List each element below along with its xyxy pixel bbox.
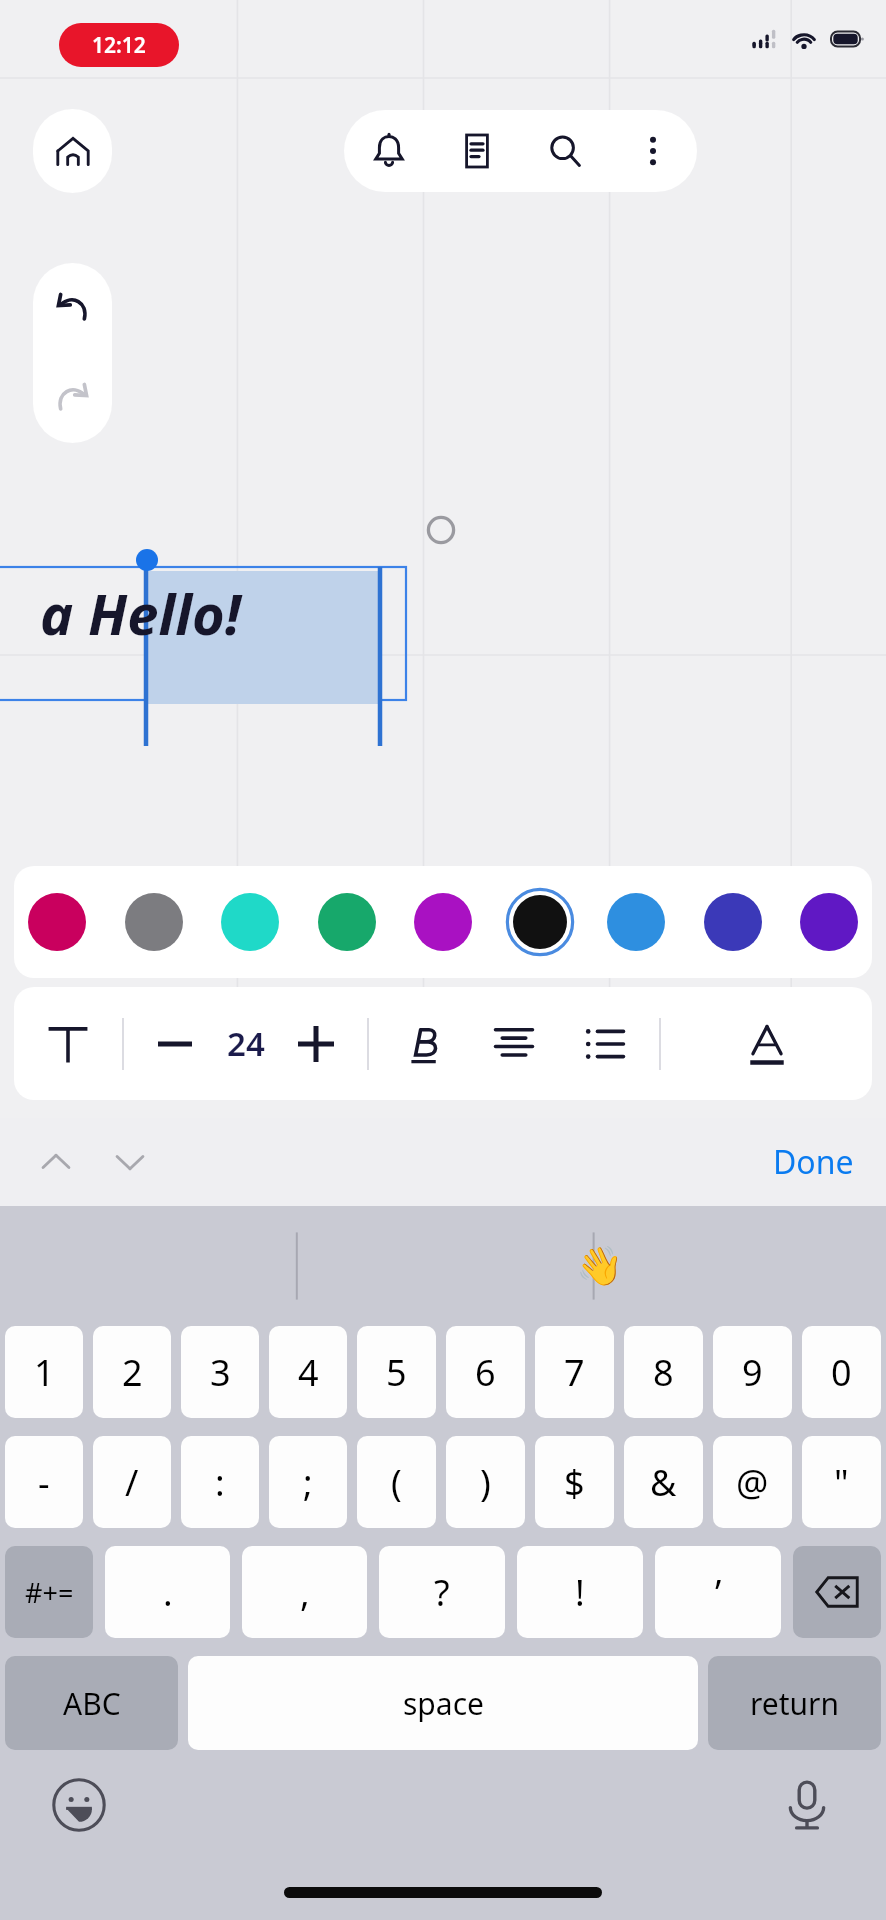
staticText: 2	[122, 1348, 143, 1397]
button[interactable]: -	[5, 1436, 83, 1528]
button[interactable]: Colour 0	[22, 887, 92, 957]
staticText: :	[215, 1458, 225, 1507]
staticText: a	[40, 575, 74, 651]
button[interactable]: )	[446, 1436, 525, 1528]
staticText: ;	[303, 1458, 313, 1507]
button[interactable]: List	[569, 1008, 641, 1080]
button[interactable]: Search	[521, 110, 609, 192]
staticText: .	[163, 1568, 173, 1617]
button[interactable]: 0	[802, 1326, 881, 1418]
button[interactable]: Undo	[33, 263, 112, 353]
button[interactable]: Notifications	[344, 110, 433, 192]
button[interactable]: :	[181, 1436, 259, 1528]
button[interactable]: Document	[433, 110, 521, 192]
staticText: "	[834, 1458, 849, 1507]
button[interactable]: ABC	[5, 1656, 178, 1750]
button[interactable]: $	[535, 1436, 614, 1528]
button[interactable]: ,	[242, 1546, 367, 1638]
staticText: (	[391, 1458, 402, 1507]
button[interactable]: ?	[379, 1546, 505, 1638]
staticText: 8	[653, 1348, 674, 1397]
button[interactable]: 6	[446, 1326, 525, 1418]
button[interactable]: Colour 3	[312, 887, 382, 957]
button[interactable]: Bold	[388, 1008, 460, 1080]
staticText: Hello!	[88, 575, 241, 651]
staticText: 0	[831, 1348, 852, 1397]
button[interactable]: More options	[609, 110, 697, 192]
button[interactable]: Next field	[100, 1132, 160, 1192]
button[interactable]: Colour 7	[698, 887, 768, 957]
staticText: &	[650, 1458, 677, 1507]
button[interactable]: Text style	[14, 987, 122, 1100]
button[interactable]: #+=	[5, 1546, 93, 1638]
button[interactable]: Colour 4	[408, 887, 478, 957]
staticText: #+=	[25, 1574, 74, 1611]
staticText: @	[736, 1458, 769, 1507]
button[interactable]: space	[188, 1656, 698, 1750]
button[interactable]: 👋	[568, 1236, 632, 1297]
staticText: 👋	[576, 1244, 624, 1289]
button[interactable]: @	[713, 1436, 792, 1528]
button[interactable]: Emoji	[46, 1772, 112, 1838]
button[interactable]: Backspace	[793, 1546, 881, 1638]
staticText: 24	[227, 1021, 265, 1066]
button[interactable]: .	[105, 1546, 230, 1638]
button[interactable]: Dictation	[774, 1772, 840, 1838]
staticText: return	[750, 1683, 840, 1724]
button[interactable]: Colour 6	[601, 887, 671, 957]
staticText: !	[575, 1568, 585, 1617]
button[interactable]: Colour 5	[505, 887, 575, 957]
button[interactable]: 4	[269, 1326, 347, 1418]
staticText: Done	[773, 1140, 854, 1184]
button[interactable]: 9	[713, 1326, 792, 1418]
button[interactable]: 7	[535, 1326, 614, 1418]
button[interactable]: (	[357, 1436, 436, 1528]
button[interactable]: /	[93, 1436, 171, 1528]
button[interactable]: return	[708, 1656, 881, 1750]
button[interactable]: Increase size	[287, 1015, 345, 1073]
button[interactable]: "	[802, 1436, 881, 1528]
staticText: ’	[715, 1568, 722, 1617]
button[interactable]: &	[624, 1436, 703, 1528]
button[interactable]: 2	[93, 1326, 171, 1418]
staticText: )	[480, 1458, 491, 1507]
button[interactable]: !	[517, 1546, 643, 1638]
button[interactable]: Text colour	[661, 987, 872, 1100]
staticText: /	[125, 1458, 139, 1507]
button[interactable]: 5	[357, 1326, 436, 1418]
button[interactable]: Previous field	[26, 1132, 86, 1192]
staticText: 4	[298, 1348, 319, 1397]
button[interactable]: 3	[181, 1326, 259, 1418]
staticText: ,	[300, 1568, 310, 1617]
button[interactable]: Done	[761, 1132, 866, 1192]
staticText: 9	[742, 1348, 763, 1397]
button[interactable]: Colour 1	[119, 887, 189, 957]
button[interactable]: Align	[478, 1008, 550, 1080]
staticText: 7	[564, 1348, 585, 1397]
button[interactable]: ;	[269, 1436, 347, 1528]
staticText: 1	[34, 1348, 55, 1397]
staticText: 5	[386, 1348, 407, 1397]
button[interactable]: Colour 8	[794, 887, 864, 957]
staticText: 6	[475, 1348, 496, 1397]
staticText: 12:12	[92, 31, 146, 60]
button[interactable]: ’	[655, 1546, 781, 1638]
staticText: $	[564, 1458, 585, 1507]
staticText: space	[403, 1683, 484, 1724]
button[interactable]: Redo	[33, 353, 112, 443]
button[interactable]: 1	[5, 1326, 83, 1418]
button[interactable]: 8	[624, 1326, 703, 1418]
button[interactable]: Home	[33, 109, 112, 193]
button[interactable]: Decrease size	[146, 1015, 204, 1073]
staticText: ?	[434, 1568, 450, 1617]
button[interactable]: Colour 2	[215, 887, 285, 957]
staticText: ABC	[63, 1683, 121, 1724]
staticText: 3	[210, 1348, 231, 1397]
staticText: -	[38, 1458, 50, 1507]
